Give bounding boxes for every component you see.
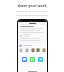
staticText: share your work [0, 3, 64, 8]
button[interactable]: Share with contact 1 [19, 48, 23, 53]
button[interactable]: Share with contact 3 [31, 48, 35, 53]
button[interactable]: Share via Telegram [38, 57, 43, 63]
button[interactable]: Share with contact 4 [36, 48, 40, 53]
button[interactable]: Share via WhatsApp [30, 57, 35, 63]
staticText: collaborate and share the results [0, 10, 64, 13]
button[interactable]: Share with contact 5 [42, 48, 46, 53]
button[interactable]: Share via Messages [22, 57, 27, 63]
button[interactable]: Share with contact 2 [25, 48, 29, 53]
staticText: with anyone, anywhere in one tap [0, 14, 64, 17]
